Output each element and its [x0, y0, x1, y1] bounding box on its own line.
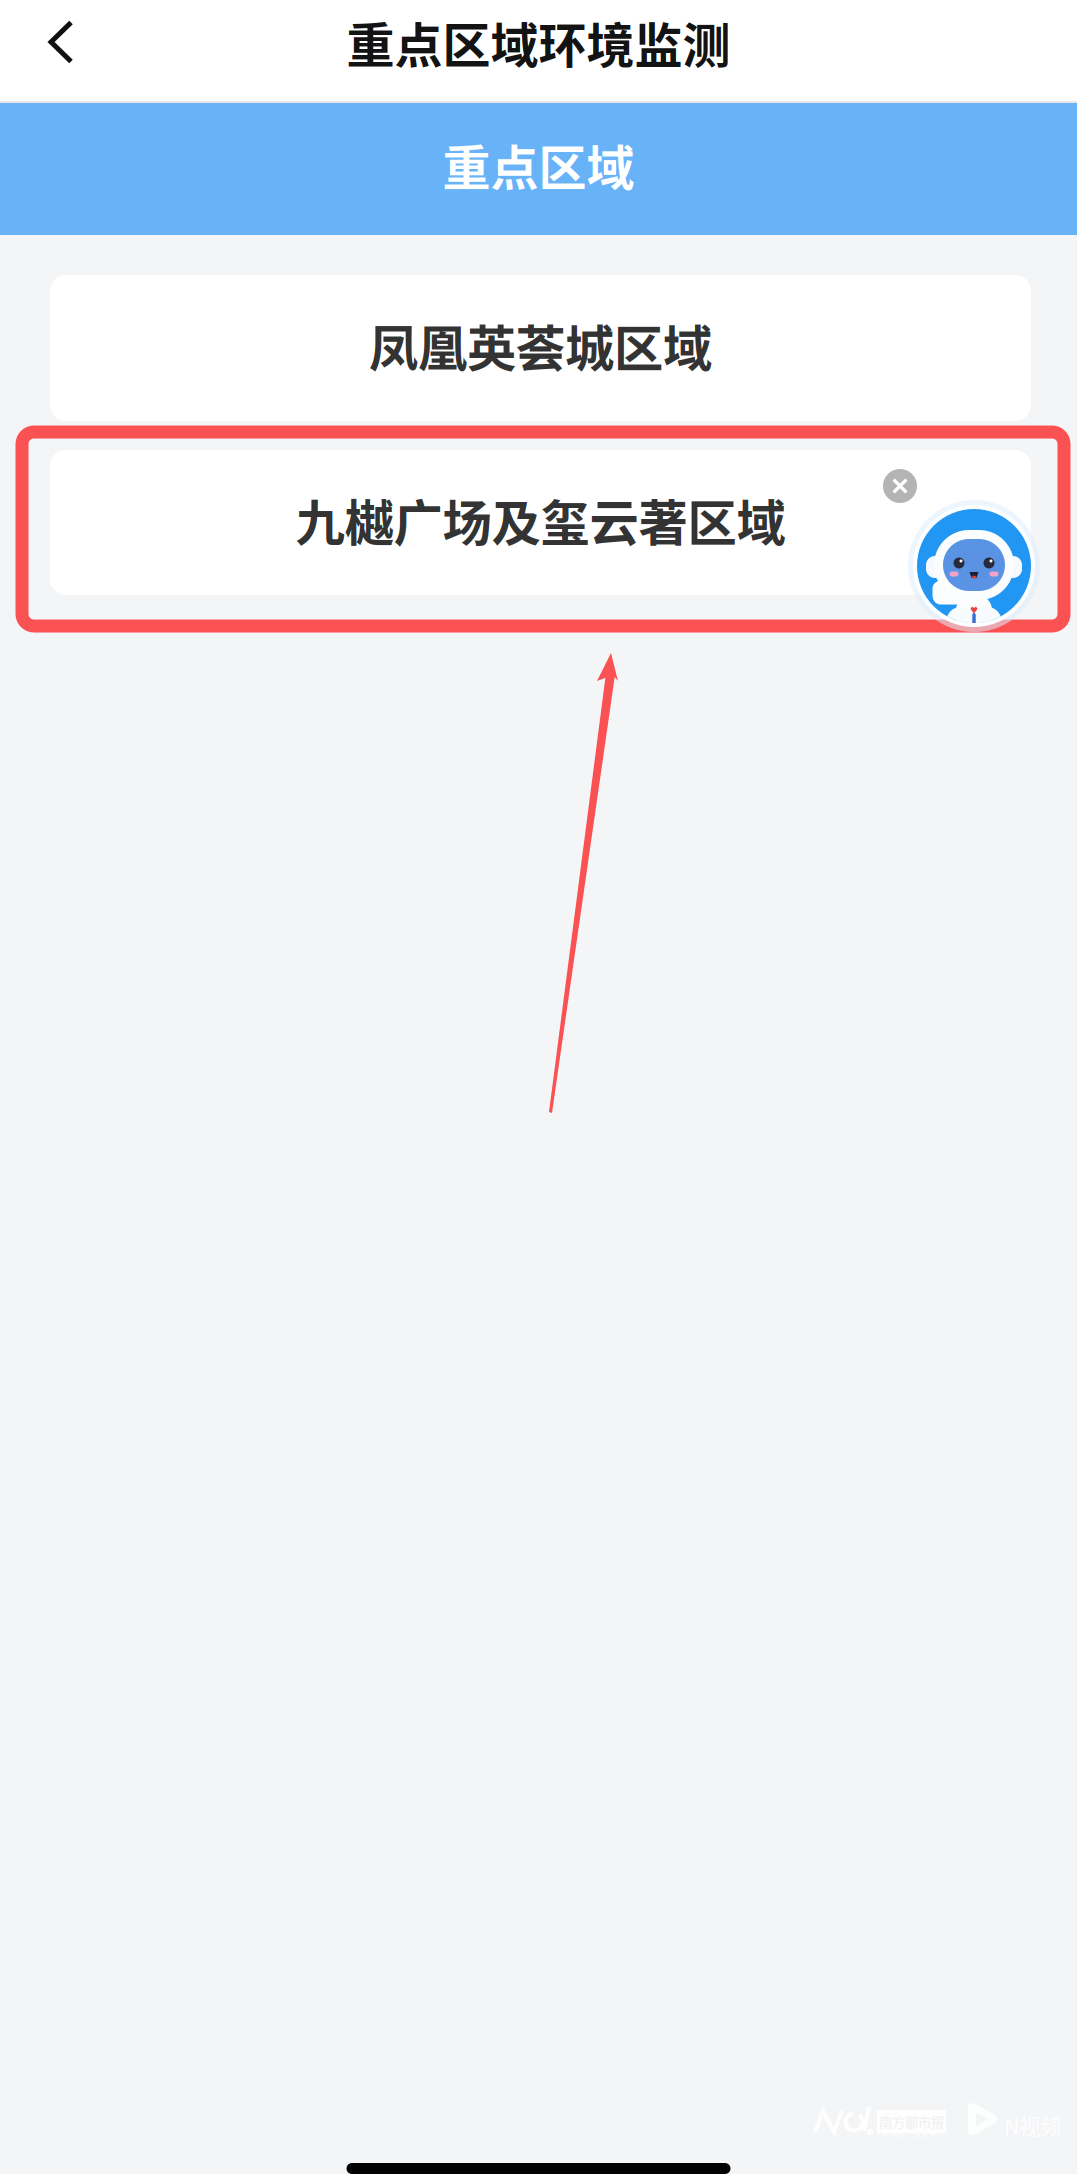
button[interactable]: 九樾广场及玺云著区域 — [50, 450, 1031, 595]
staticText: 誉中国·道繁荣 — [881, 2127, 937, 2139]
button[interactable]: 凤凰英荟城区域 — [50, 275, 1031, 421]
button[interactable]: Assistant — [908, 500, 1040, 632]
staticText: 凤凰英荟城区域 — [369, 309, 712, 381]
staticText: N视频 — [1004, 2110, 1061, 2141]
staticText: 重点区域 — [442, 130, 634, 199]
staticText: 九樾广场及玺云著区域 — [295, 484, 785, 555]
staticText: 重点区域环境监测 — [346, 7, 730, 77]
staticText: 南方都市报 — [879, 2112, 944, 2131]
button[interactable]: Back — [0, 0, 122, 84]
button[interactable]: Close — [883, 469, 917, 503]
